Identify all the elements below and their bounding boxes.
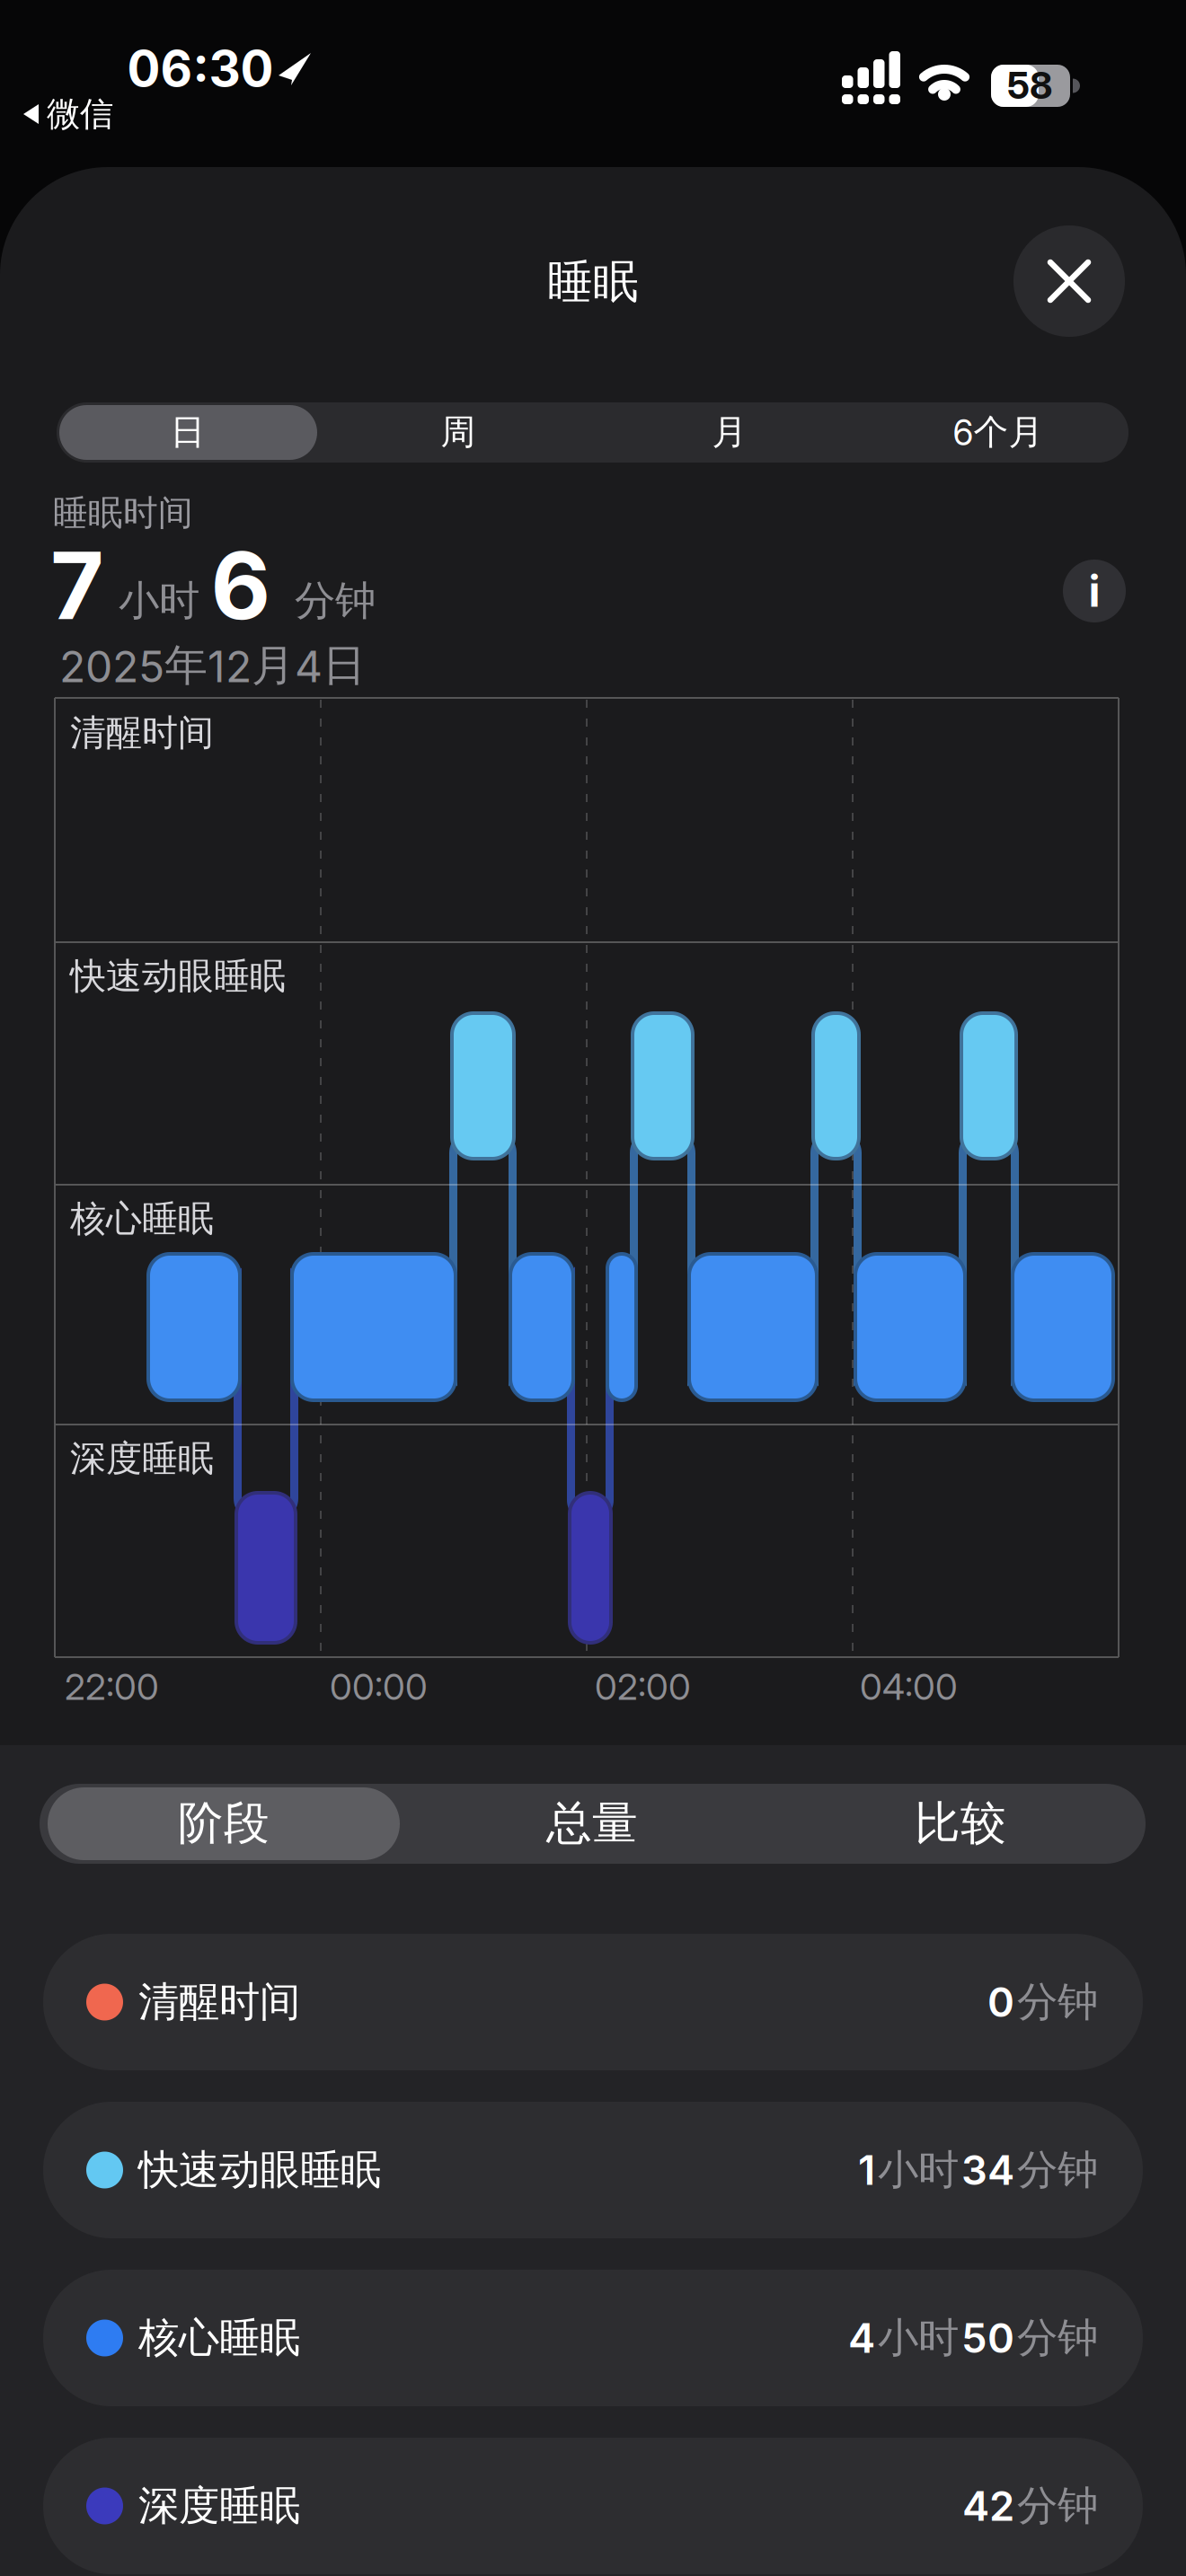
staticText: 核心睡眠: [70, 1196, 214, 1241]
staticText: 快速动眼睡眠: [138, 2144, 381, 2196]
staticText: 深度睡眠: [70, 1436, 214, 1481]
button[interactable]: 周: [324, 402, 592, 462]
staticText: 比较: [915, 1795, 1006, 1852]
staticText: 6个月: [953, 410, 1044, 454]
staticText: 2025年12月4日: [59, 638, 366, 693]
button[interactable]: 微信: [23, 93, 113, 135]
staticText: 0: [987, 1977, 1014, 2027]
staticText: 6: [211, 530, 271, 641]
staticText: 小时: [119, 575, 199, 626]
button[interactable]: 日: [58, 402, 318, 462]
staticText: 分钟: [1017, 2312, 1098, 2364]
button[interactable]: 阶段: [44, 1783, 403, 1863]
staticText: 04:00: [860, 1665, 958, 1709]
staticText: 7: [50, 530, 104, 641]
staticText: 清醒时间: [138, 1976, 300, 2028]
staticText: 02:00: [595, 1665, 691, 1709]
staticText: i: [1089, 565, 1100, 617]
staticText: 快速动眼睡眠: [70, 954, 286, 999]
staticText: 微信: [47, 93, 113, 135]
staticText: 睡眠时间: [53, 491, 193, 535]
button[interactable]: 比较: [776, 1783, 1145, 1863]
button[interactable]: 总量: [408, 1783, 776, 1863]
staticText: 分钟: [1017, 1976, 1098, 2028]
button[interactable]: 信息: [1063, 560, 1126, 622]
staticText: 阶段: [178, 1795, 270, 1852]
staticText: 06:30: [127, 39, 274, 98]
staticText: 周: [441, 410, 476, 454]
staticText: 小时: [878, 2144, 959, 2196]
staticText: 小时: [878, 2312, 959, 2364]
button[interactable]: 关闭: [1013, 225, 1125, 337]
staticText: 50: [961, 2313, 1014, 2363]
staticText: 4: [848, 2313, 875, 2363]
staticText: 分钟: [1017, 2480, 1098, 2532]
staticText: 58: [1007, 63, 1052, 108]
staticText: 睡眠: [547, 253, 639, 311]
staticText: 22:00: [65, 1665, 159, 1709]
button[interactable]: 深度睡眠: [43, 2438, 1143, 2574]
button[interactable]: 核心睡眠: [43, 2270, 1143, 2406]
staticText: 42: [962, 2481, 1014, 2531]
staticText: 分钟: [1017, 2144, 1098, 2196]
staticText: 清醒时间: [70, 710, 214, 756]
button[interactable]: 快速动眼睡眠: [43, 2102, 1143, 2238]
staticText: 分钟: [295, 575, 376, 626]
staticText: 深度睡眠: [138, 2480, 300, 2532]
staticText: 核心睡眠: [138, 2312, 300, 2364]
button[interactable]: 清醒时间: [43, 1934, 1143, 2070]
staticText: 月: [712, 410, 747, 454]
staticText: 00:00: [330, 1665, 428, 1709]
staticText: 34: [961, 2145, 1014, 2195]
button[interactable]: 6个月: [864, 402, 1132, 462]
staticText: 总量: [546, 1795, 638, 1852]
staticText: 日: [170, 410, 205, 454]
staticText: 1: [858, 2145, 875, 2195]
button[interactable]: 月: [596, 402, 863, 462]
